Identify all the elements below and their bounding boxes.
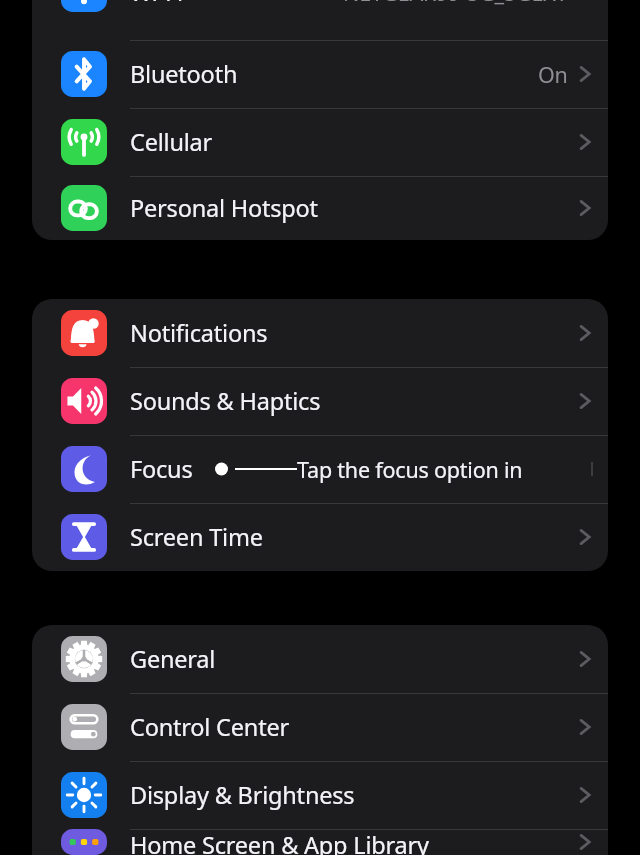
- button[interactable]: Wi-Fi: [32, 0, 608, 40]
- button[interactable]: Screen Time: [32, 503, 608, 571]
- staticText: Screen Time: [130, 521, 263, 553]
- staticText: Sounds & Haptics: [130, 385, 321, 417]
- button[interactable]: Focus: [32, 435, 608, 503]
- staticText: Focus: [130, 453, 193, 485]
- staticText: Cellular: [130, 126, 213, 158]
- staticText: Display & Brightness: [130, 779, 355, 811]
- staticText: Personal Hotspot: [130, 192, 318, 224]
- staticText: General: [130, 643, 216, 675]
- staticText: Wi-Fi: [130, 0, 183, 8]
- staticText: On: [538, 60, 568, 89]
- button[interactable]: Cellular: [32, 108, 608, 176]
- button[interactable]: Notifications: [32, 299, 608, 367]
- button[interactable]: Control Center: [32, 693, 608, 761]
- staticText: Tap the focus option in settings: [297, 455, 592, 484]
- button[interactable]: Home Screen & App Library: [32, 829, 608, 855]
- staticText: Home Screen & App Library: [130, 829, 429, 855]
- button[interactable]: Display & Brightness: [32, 761, 608, 829]
- staticText: Bluetooth: [130, 58, 238, 90]
- staticText: Control Center: [130, 711, 289, 743]
- button[interactable]: General: [32, 625, 608, 693]
- button[interactable]: Bluetooth: [32, 40, 608, 108]
- staticText: NETGEAR99-5G_5GEXT: [343, 0, 568, 7]
- staticText: Notifications: [130, 317, 268, 349]
- button[interactable]: Personal Hotspot: [32, 176, 608, 240]
- button[interactable]: Sounds & Haptics: [32, 367, 608, 435]
